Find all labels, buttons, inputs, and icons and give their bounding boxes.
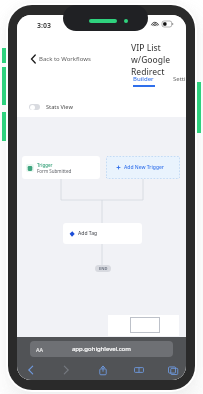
button[interactable]: Forward: [59, 363, 73, 377]
button[interactable]: Share: [96, 363, 110, 377]
button[interactable]: Stats View: [29, 103, 73, 110]
staticText: VIP List: [131, 42, 161, 54]
staticText: AA: [36, 346, 44, 353]
staticText: Redirect: [131, 66, 165, 78]
staticText: Builder: [133, 75, 154, 83]
button[interactable]: app.gohighlevel.com: [30, 341, 173, 357]
button[interactable]: Settings: [173, 75, 186, 83]
button[interactable]: Builder: [131, 75, 156, 87]
staticText: w/Google: [131, 54, 171, 66]
staticText: END: [99, 266, 108, 271]
button[interactable]: Add New Trigger: [106, 156, 180, 179]
staticText: Add Tag: [78, 230, 98, 237]
staticText: Add New Trigger: [124, 164, 164, 171]
staticText: Back to Workflows: [39, 55, 91, 63]
staticText: Trigger: [37, 162, 53, 168]
button[interactable]: Back: [24, 363, 38, 377]
staticText: Stats View: [46, 103, 73, 110]
button[interactable]: Back to Workflows: [31, 55, 91, 63]
staticText: Form Submitted: [37, 168, 72, 174]
button[interactable]: Trigger: [22, 156, 100, 179]
button[interactable]: Tabs: [166, 363, 180, 377]
staticText: 3:03: [37, 21, 51, 31]
button[interactable]: Add Tag: [63, 223, 142, 244]
button[interactable]: Bookmarks: [132, 363, 146, 377]
staticText: app.gohighlevel.com: [72, 345, 131, 353]
